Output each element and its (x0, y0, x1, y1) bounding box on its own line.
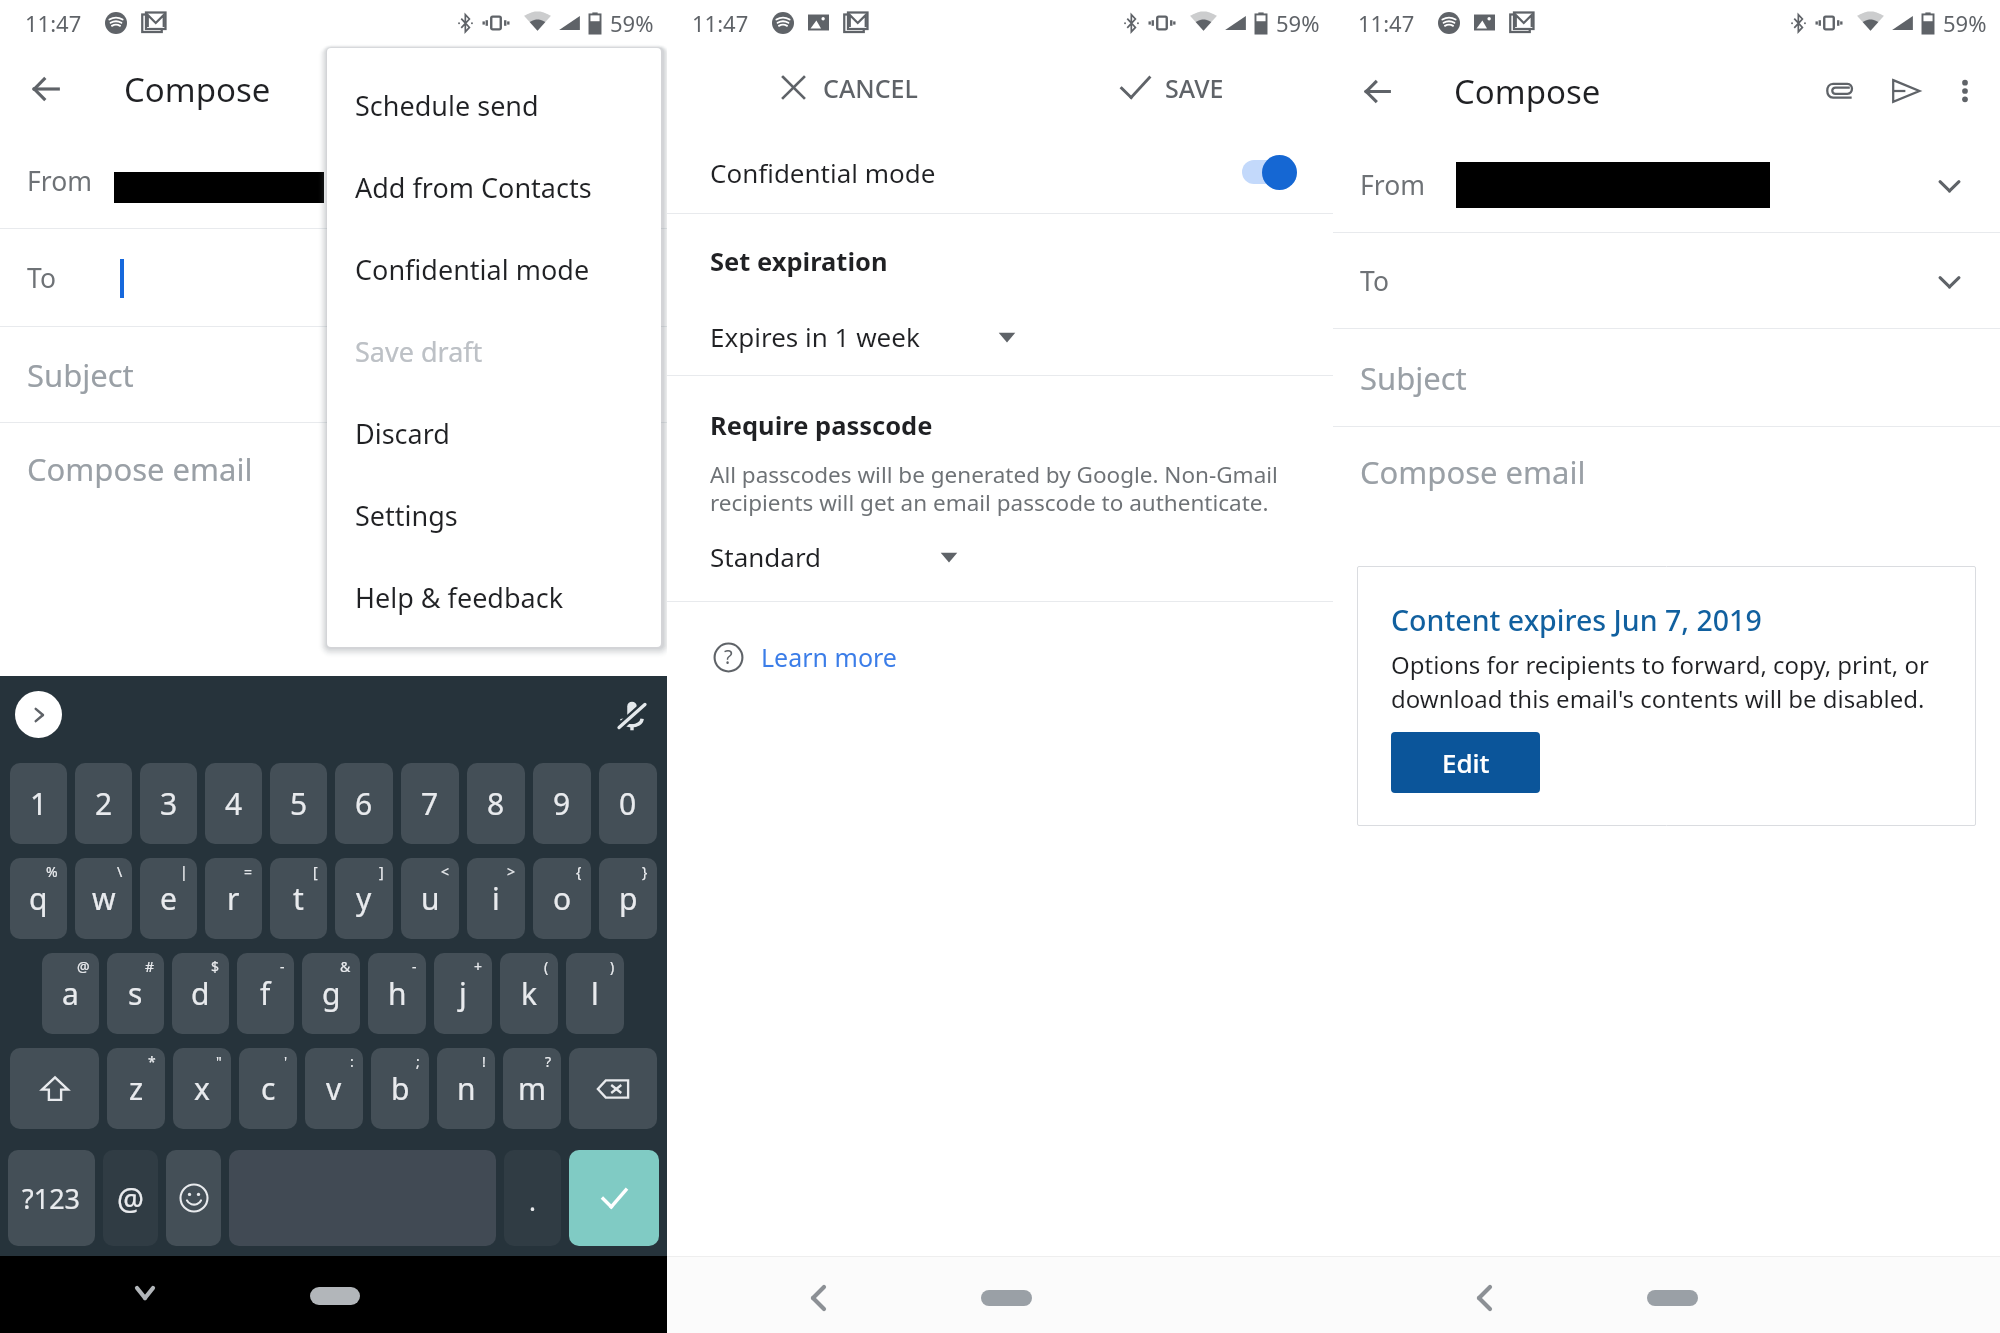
button[interactable]: Confidential mode (327, 228, 661, 310)
staticText: ?123 (22, 1180, 81, 1217)
button[interactable]: Compose email (1333, 427, 2000, 517)
button[interactable]: Attach file (1814, 65, 1866, 117)
button[interactable]: t (270, 858, 327, 939)
button[interactable]: Subject (0, 327, 667, 423)
button[interactable]: SAVE (1010, 45, 1333, 130)
staticText: 4 (225, 783, 243, 824)
button[interactable]: p (599, 858, 657, 939)
button[interactable]: Send (1880, 65, 1932, 117)
button[interactable]: 7 (401, 763, 459, 844)
button[interactable]: More options (1942, 68, 1988, 114)
button[interactable]: Schedule send (327, 64, 661, 146)
button[interactable]: Microphone off (615, 699, 649, 733)
button[interactable]: Back (1354, 68, 1400, 114)
button[interactable]: j (434, 953, 492, 1034)
button[interactable]: Expand from (1929, 165, 1969, 205)
button[interactable]: r (205, 858, 262, 939)
button[interactable]: n (437, 1048, 495, 1129)
button[interactable]: u (401, 858, 459, 939)
button[interactable]: 5 (270, 763, 327, 844)
button[interactable] (10, 1048, 99, 1129)
button[interactable]: o (533, 858, 591, 939)
staticText: > (507, 862, 516, 881)
button[interactable]: 1 (10, 763, 67, 844)
button[interactable]: b (371, 1048, 429, 1129)
staticText: < (441, 862, 450, 881)
staticText: Require passcode (710, 408, 933, 443)
button[interactable]: Add from Contacts (327, 146, 661, 228)
staticText: k (521, 973, 538, 1014)
button[interactable]: s (107, 953, 164, 1034)
button[interactable]: Emoji (166, 1150, 221, 1246)
staticText: g (322, 973, 341, 1014)
button[interactable]: m (503, 1048, 561, 1129)
staticText: & (340, 957, 351, 976)
button[interactable]: Back (23, 66, 69, 112)
button[interactable]: Expand to (1929, 261, 1969, 301)
staticText: - (412, 957, 417, 976)
button[interactable]: w (75, 858, 132, 939)
button[interactable]: 8 (467, 763, 525, 844)
staticText: Settings (355, 497, 458, 534)
staticText: { (576, 862, 582, 881)
button[interactable]: x (173, 1048, 231, 1129)
button[interactable]: f (237, 953, 294, 1034)
button[interactable]: ? (713, 640, 897, 674)
button[interactable]: Standard (710, 539, 958, 574)
staticText: z (129, 1068, 144, 1109)
button[interactable]: 2 (75, 763, 132, 844)
staticText: ' (284, 1052, 288, 1071)
staticText: b (391, 1068, 410, 1109)
button[interactable]: d (172, 953, 229, 1034)
button[interactable]: a (42, 953, 99, 1034)
staticText: : (350, 1052, 354, 1071)
button[interactable]: @ (103, 1150, 158, 1246)
button[interactable]: Enter (569, 1150, 659, 1246)
staticText: Discard (355, 415, 450, 452)
button[interactable]: Edit (1391, 732, 1540, 793)
button[interactable]: Confidential mode (667, 130, 1333, 214)
staticText: $ (211, 957, 220, 976)
button[interactable]: e (140, 858, 197, 939)
staticText: e (160, 878, 177, 919)
staticText: [ (313, 862, 318, 881)
staticText: j (459, 973, 467, 1014)
staticText: CANCEL (823, 71, 918, 105)
staticText: 3 (160, 783, 178, 824)
button[interactable]: Compose email (0, 423, 667, 515)
button[interactable]: i (467, 858, 525, 939)
button[interactable]: 4 (205, 763, 262, 844)
button[interactable]: 6 (335, 763, 393, 844)
staticText: i (492, 878, 500, 919)
button[interactable]: 3 (140, 763, 197, 844)
button[interactable]: c (239, 1048, 297, 1129)
button[interactable]: Subject (1333, 329, 2000, 427)
staticText: 1 (30, 783, 48, 824)
staticText: l (591, 973, 599, 1014)
button[interactable]: y (335, 858, 393, 939)
button[interactable]: k (500, 953, 558, 1034)
button[interactable]: g (302, 953, 360, 1034)
button[interactable]: Expand (15, 691, 62, 738)
button[interactable]: 0 (599, 763, 657, 844)
button[interactable]: Help & feedback (327, 556, 661, 638)
button[interactable] (569, 1048, 657, 1129)
button[interactable]: h (368, 953, 426, 1034)
staticText: Save draft (355, 333, 483, 370)
button[interactable]: v (305, 1048, 363, 1129)
button[interactable]: CANCEL (688, 45, 1010, 130)
button[interactable]: l (566, 953, 624, 1034)
button[interactable]: Expires in 1 week (710, 319, 1016, 354)
button[interactable]: Settings (327, 474, 661, 556)
button[interactable]: q (10, 858, 67, 939)
button[interactable]: z (107, 1048, 165, 1129)
staticText: h (388, 973, 407, 1014)
staticText: Learn more (761, 640, 897, 674)
button[interactable]: . (504, 1150, 561, 1246)
button[interactable]: 9 (533, 763, 591, 844)
button[interactable]: ?123 (8, 1150, 95, 1246)
button[interactable]: Save draft (327, 310, 661, 392)
staticText: = (244, 862, 253, 881)
button[interactable]: Discard (327, 392, 661, 474)
